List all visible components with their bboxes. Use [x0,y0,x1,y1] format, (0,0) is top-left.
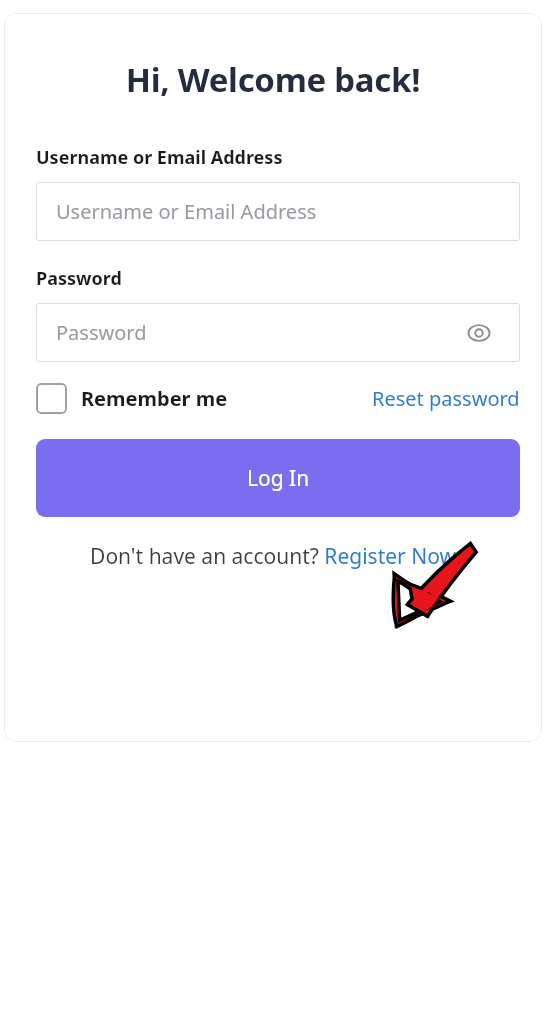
button[interactable]: Don't have an account? Register Now [4,542,542,571]
button[interactable]: Show password [466,320,492,346]
staticText: Hi, Welcome back! [4,57,542,102]
staticText: Log In [247,464,310,493]
button[interactable]: Username or Email Address [36,182,520,241]
staticText: Remember me [81,385,228,412]
button[interactable]: Remember me [36,383,234,414]
staticText: Don't have an account? Register Now [90,542,456,571]
staticText: Password [36,266,122,291]
button[interactable]: Password [36,303,520,362]
staticText: Password [56,319,147,346]
button[interactable]: Log In [36,439,520,517]
staticText: Username or Email Address [36,145,283,170]
staticText: Username or Email Address [56,198,317,225]
staticText: Reset password [372,385,520,412]
button[interactable]: Reset password [372,385,520,412]
